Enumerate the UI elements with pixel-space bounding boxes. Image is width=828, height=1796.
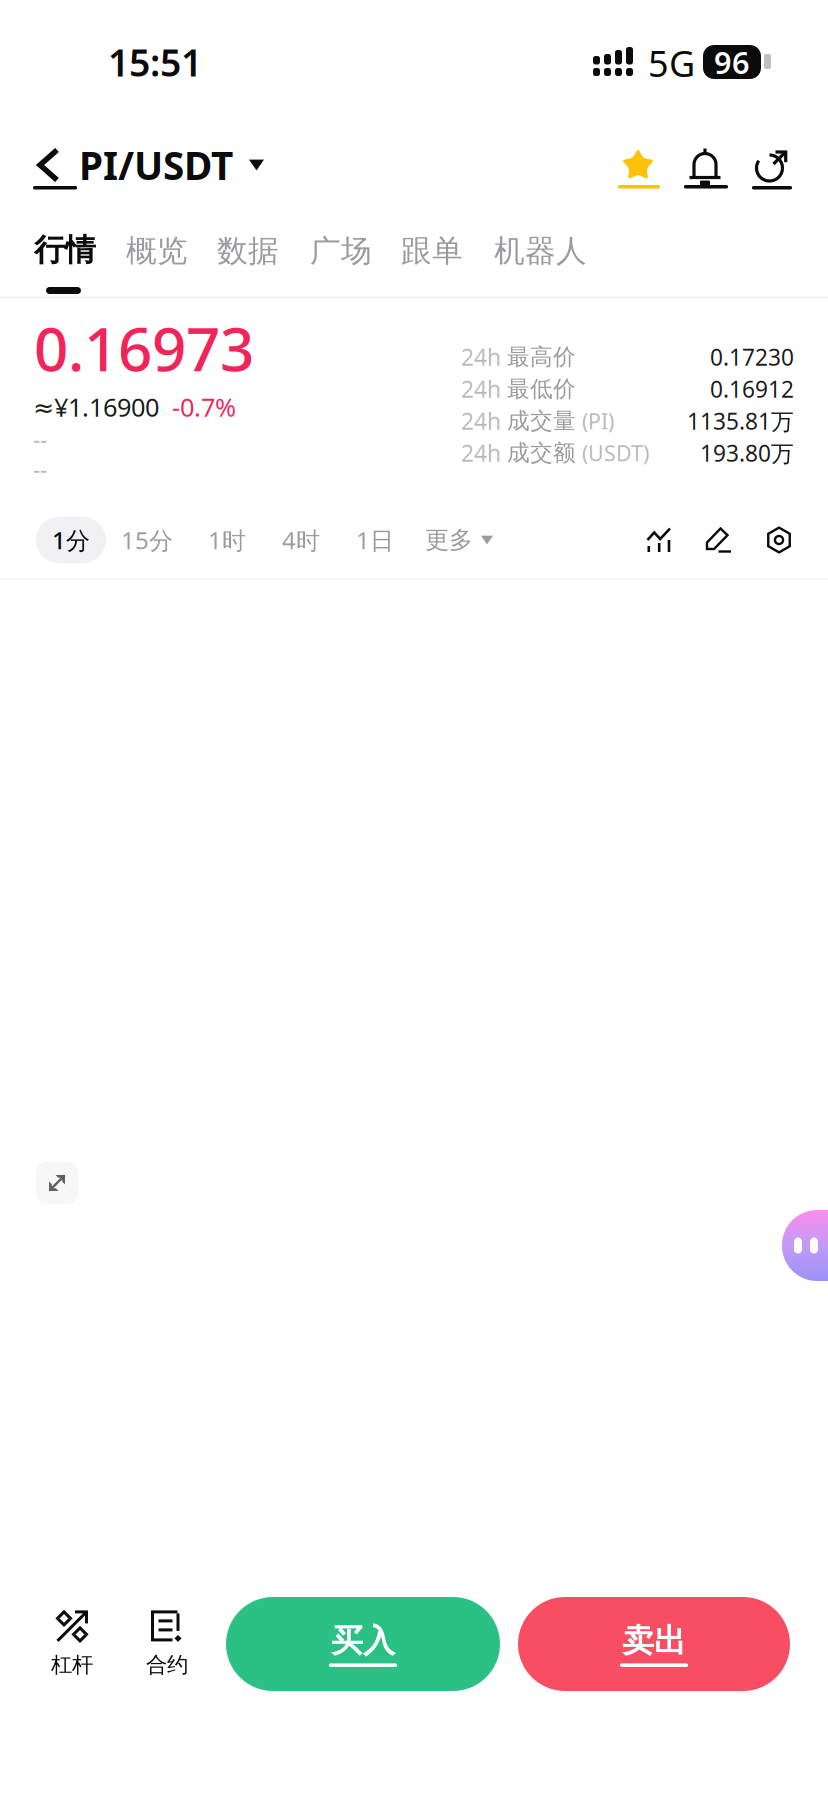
staticText: 24h (461, 342, 507, 372)
button[interactable]: 机器人 (494, 232, 587, 270)
button[interactable]: Assistant (782, 1210, 828, 1281)
staticText: 15分 (121, 524, 173, 556)
staticText: 数据 (217, 232, 279, 270)
button[interactable]: 卖出 (518, 1597, 790, 1691)
button[interactable]: Price alert (684, 148, 728, 192)
button[interactable]: Full screen chart (36, 1162, 78, 1204)
staticText: 0.17230 (710, 342, 794, 372)
staticText: 1分 (52, 524, 90, 556)
staticText: 4时 (282, 524, 320, 556)
button[interactable]: 广场 (310, 232, 372, 270)
staticText: (PI) (576, 407, 614, 435)
button[interactable]: 1日 (346, 517, 404, 563)
staticText: 24h (461, 406, 507, 436)
staticText: 1135.81万 (687, 406, 794, 436)
staticText: (USDT) (576, 439, 649, 467)
staticText: 杠杆 (51, 1652, 93, 1678)
button[interactable]: Add to favourites (618, 148, 660, 192)
button[interactable]: 概览 (126, 232, 188, 270)
button[interactable]: 更多 (425, 517, 505, 563)
button[interactable]: Share (752, 149, 792, 193)
staticText: 卖出 (622, 1621, 686, 1660)
button[interactable]: Chart settings (756, 517, 802, 563)
button[interactable]: Back (28, 147, 86, 193)
staticText: 96 (714, 42, 750, 82)
button[interactable]: 行情 (34, 232, 96, 296)
staticText: 机器人 (494, 232, 587, 270)
staticText: -- (33, 454, 47, 484)
staticText: 24h (461, 374, 507, 404)
button[interactable]: Indicators (636, 517, 682, 563)
button[interactable]: 4时 (272, 517, 330, 563)
staticText: 193.80万 (700, 438, 794, 468)
staticText: 广场 (310, 232, 372, 270)
button[interactable]: 杠杆 (26, 1599, 118, 1689)
staticText: 行情 (34, 231, 96, 269)
staticText: 0.16912 (710, 374, 794, 404)
button[interactable]: 15分 (111, 517, 183, 563)
staticText: 0.16973 (34, 308, 254, 388)
staticText: 概览 (126, 232, 188, 270)
staticText: 最低价 (507, 375, 576, 403)
staticText: ≈¥1.16900 (33, 390, 159, 424)
button[interactable]: 1时 (198, 517, 256, 563)
staticText: 5G (648, 39, 695, 87)
staticText: 成交量 (507, 407, 576, 435)
staticText: 15:51 (108, 37, 202, 87)
staticText: 买入 (331, 1621, 395, 1660)
staticText: 跟单 (401, 232, 463, 270)
staticText: 成交额 (507, 439, 576, 467)
staticText: 合约 (146, 1652, 188, 1678)
staticText: 最高价 (507, 343, 576, 371)
button[interactable]: 合约 (121, 1599, 213, 1689)
button[interactable]: PI/USDT (79, 142, 269, 188)
staticText: 24h (461, 438, 507, 468)
staticText: 1时 (208, 524, 246, 556)
button[interactable]: 数据 (217, 232, 279, 270)
button[interactable]: 跟单 (401, 232, 463, 270)
staticText: -- (33, 424, 47, 454)
button[interactable]: 买入 (226, 1597, 500, 1691)
button[interactable]: Drawing tools (696, 517, 742, 563)
staticText: 更多 (425, 525, 473, 555)
staticText: 1日 (356, 524, 394, 556)
staticText: -0.7% (172, 390, 236, 424)
button[interactable]: 1分 (36, 517, 106, 563)
staticText: PI/USDT (79, 139, 233, 191)
